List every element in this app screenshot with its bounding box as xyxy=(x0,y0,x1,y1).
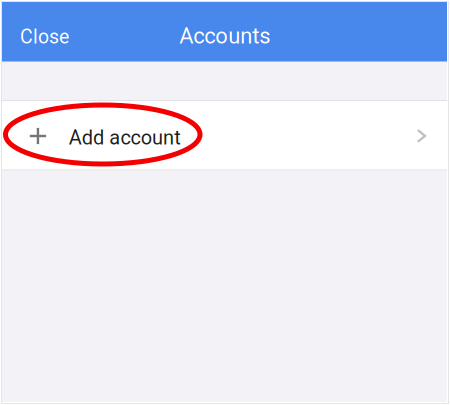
staticText: Accounts xyxy=(179,23,270,49)
staticText: Add account xyxy=(69,126,181,149)
button[interactable]: Add account xyxy=(2,100,447,170)
staticText: Close xyxy=(20,25,69,48)
button[interactable]: Close xyxy=(2,2,98,61)
